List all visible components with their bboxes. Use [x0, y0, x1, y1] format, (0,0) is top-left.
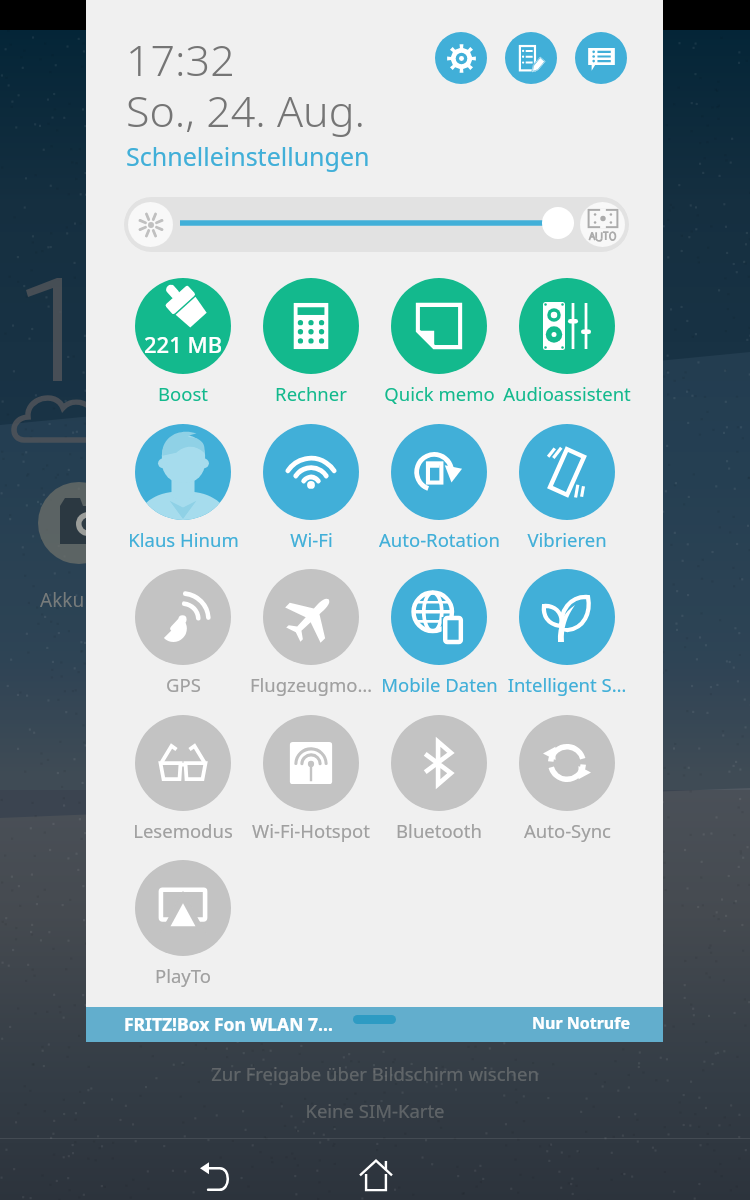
staticText: GPS [166, 672, 201, 697]
button[interactable]: Auto brightness [124, 197, 629, 252]
staticText: Vibrieren [527, 527, 607, 552]
button[interactable]: PlayTo [119, 856, 247, 996]
button[interactable]: GPS [119, 565, 247, 705]
staticText: 17:32 [126, 30, 235, 89]
staticText: Wi-Fi-Hotspot [252, 818, 370, 843]
button[interactable]: Audioassistent [503, 274, 631, 414]
staticText: Audioassistent [503, 381, 631, 406]
staticText: Boost [158, 381, 208, 406]
staticText: Mobile Daten [381, 672, 498, 697]
staticText: Auto-Rotation [379, 527, 500, 552]
button[interactable]: Home [352, 1152, 400, 1200]
staticText: Zur Freigabe über Bildschirm wischen [0, 1061, 750, 1086]
button[interactable]: Flugzeugmod… [247, 565, 375, 705]
staticText: Lesemodus [133, 818, 233, 843]
staticText: Quick memo [384, 381, 495, 406]
staticText: Klaus Hinum [128, 527, 239, 552]
button[interactable]: Vibrieren [503, 420, 631, 560]
button[interactable]: Klaus Hinum [119, 420, 247, 560]
button[interactable]: Auto brightness [580, 202, 625, 247]
staticText: Nur Notrufe [532, 1012, 630, 1034]
staticText: 221 MB [144, 329, 223, 359]
staticText: Auto-Sync [524, 818, 611, 843]
staticText: FRITZ!Box Fon WLAN 7… [124, 1012, 333, 1036]
button[interactable]: Wi-Fi-Hotspot [247, 711, 375, 851]
staticText: Bluetooth [396, 818, 482, 843]
button[interactable]: Lesemodus [119, 711, 247, 851]
button[interactable]: Quick memo [505, 32, 557, 84]
button[interactable]: Intelligent Sp… [503, 565, 631, 705]
staticText: Akku [40, 587, 85, 613]
button[interactable]: Settings [435, 32, 487, 84]
button[interactable]: Auto-Sync [503, 711, 631, 851]
button[interactable]: Mobile Daten [375, 565, 503, 705]
staticText: PlayTo [155, 963, 211, 988]
button[interactable]: Rechner [247, 274, 375, 414]
button[interactable]: 221 MB [119, 274, 247, 414]
staticText: Flugzeugmod… [247, 672, 375, 697]
button[interactable]: Quick memo [375, 274, 503, 414]
button[interactable]: Back [191, 1152, 239, 1200]
staticText: Keine SIM-Karte [0, 1098, 750, 1123]
staticText: So., 24. Aug. [126, 81, 365, 140]
staticText: Schnelleinstellungen [126, 139, 370, 173]
button[interactable]: Wi-Fi [247, 420, 375, 560]
button[interactable]: Notifications [575, 32, 627, 84]
button[interactable]: Auto-Rotation [375, 420, 503, 560]
staticText: Wi-Fi [290, 527, 333, 552]
button[interactable]: Bluetooth [375, 711, 503, 851]
staticText: Intelligent Sp… [503, 672, 631, 697]
staticText: Rechner [275, 381, 347, 406]
